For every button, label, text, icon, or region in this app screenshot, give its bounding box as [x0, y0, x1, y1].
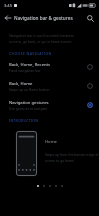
staticText: INTRODUCTION: [9, 118, 39, 123]
staticText: Navigation bar is used to switch between…: [9, 33, 75, 44]
staticText: Use gestures to navigate: [9, 106, 48, 110]
button[interactable]: Search: [84, 12, 96, 24]
button[interactable]: Back, Home: [0, 76, 99, 95]
staticText: Back, Home: [9, 81, 33, 87]
staticText: 3:45: [4, 3, 12, 8]
button[interactable]: Back, Home, Recents: [0, 57, 99, 76]
staticText: Fixed navigation bar: [9, 68, 41, 72]
staticText: Back, Home, Recents: [9, 62, 51, 68]
button[interactable]: Navigation gestures: [0, 95, 99, 114]
staticText: Navigation gestures: [9, 100, 49, 106]
staticText: Swipe up from the bottom edge of the scr…: [45, 152, 99, 163]
staticText: Navigation bar & gestures: [14, 15, 73, 21]
button[interactable]: Back: [2, 12, 14, 24]
staticText: Swipe up on Home button: [9, 87, 50, 91]
staticText: CHOOSE NAVIGATION: [9, 51, 52, 56]
staticText: Home: [45, 139, 57, 145]
